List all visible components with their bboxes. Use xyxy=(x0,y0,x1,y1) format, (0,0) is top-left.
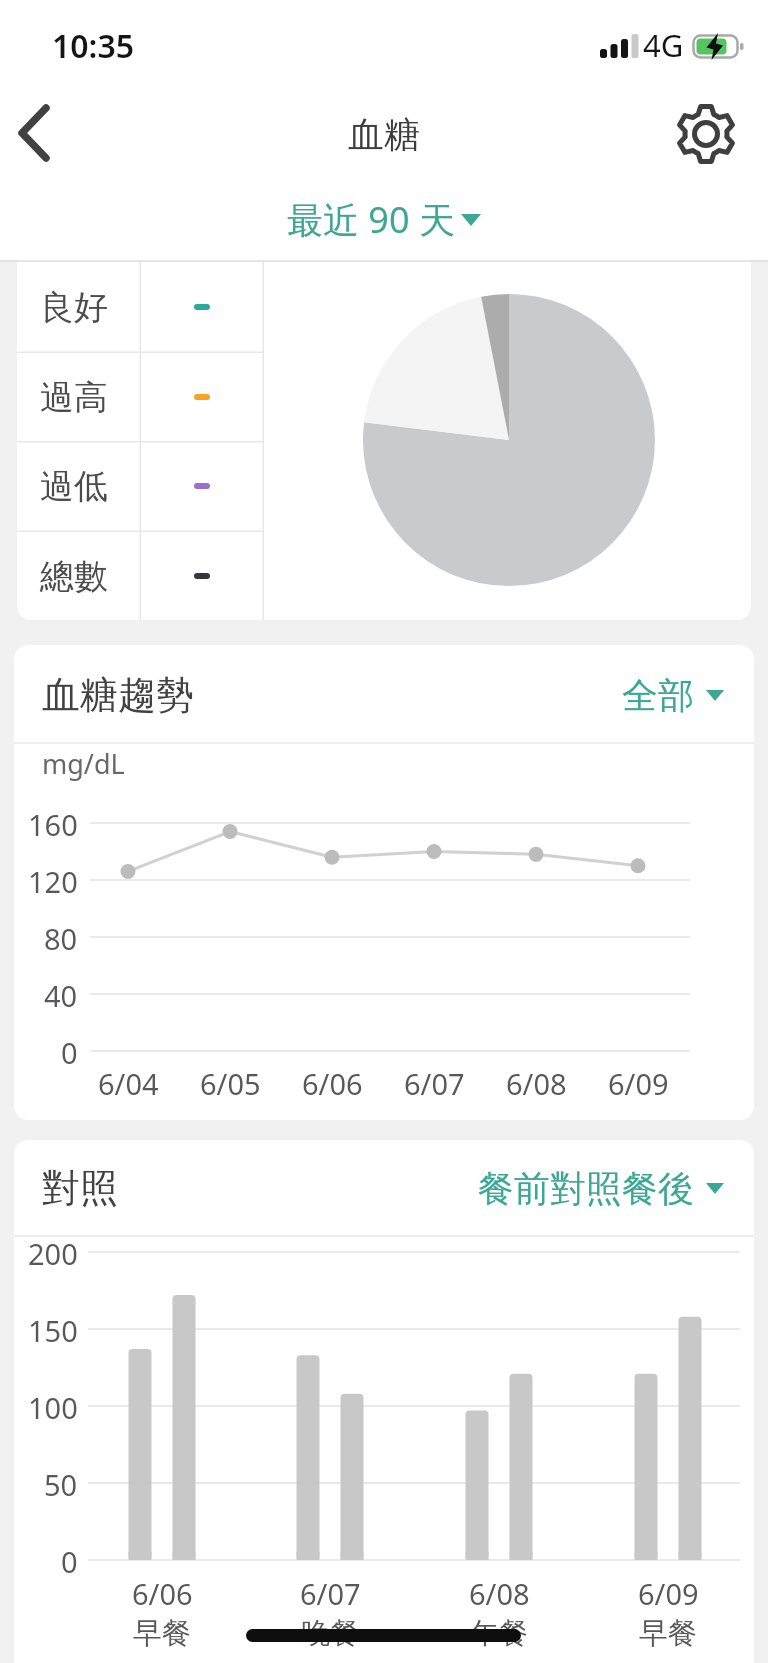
staticText: 6/06 xyxy=(302,1064,363,1100)
staticText: 80 xyxy=(44,919,78,955)
staticText: 6/06 xyxy=(132,1574,193,1610)
staticText: 過高 xyxy=(40,376,108,419)
staticText: 150 xyxy=(28,1311,78,1347)
staticText: 6/07 xyxy=(404,1064,465,1100)
staticText: 40 xyxy=(44,976,78,1012)
staticText: 6/09 xyxy=(638,1574,699,1610)
staticText: 50 xyxy=(44,1465,78,1501)
staticText: 全部 xyxy=(622,673,694,718)
staticText: 最近 90 天 xyxy=(287,195,455,244)
button[interactable] xyxy=(670,96,742,172)
button[interactable]: 全部 xyxy=(584,665,724,725)
staticText: 血糖 xyxy=(348,112,420,157)
staticText: 4G xyxy=(643,24,684,66)
staticText: 總數 xyxy=(40,555,108,598)
staticText: 6/09 xyxy=(608,1064,669,1100)
staticText: 200 xyxy=(28,1234,78,1270)
button[interactable]: 餐前對照餐後 xyxy=(454,1158,724,1218)
staticText: 6/04 xyxy=(98,1064,159,1100)
staticText: 160 xyxy=(28,805,78,841)
staticText: 0 xyxy=(61,1542,78,1578)
staticText: 6/08 xyxy=(506,1064,567,1100)
button[interactable]: 最近 90 天 xyxy=(0,178,768,260)
staticText: 餐前對照餐後 xyxy=(478,1166,694,1211)
staticText: 10:35 xyxy=(52,24,135,66)
staticText: 過低 xyxy=(40,465,108,508)
staticText: 早餐 xyxy=(639,1615,697,1652)
staticText: 良好 xyxy=(40,286,108,329)
staticText: mg/dL xyxy=(42,745,125,781)
staticText: 早餐 xyxy=(133,1615,191,1652)
staticText: 6/07 xyxy=(300,1574,361,1610)
staticText: 0 xyxy=(61,1033,78,1069)
staticText: 對照 xyxy=(42,1164,118,1212)
button[interactable] xyxy=(4,98,68,170)
staticText: 6/08 xyxy=(469,1574,530,1610)
staticText: 6/05 xyxy=(200,1064,261,1100)
staticText: 血糖趨勢 xyxy=(42,671,194,719)
staticText: 120 xyxy=(28,862,78,898)
staticText: 晚餐 xyxy=(301,1615,359,1652)
staticText: 100 xyxy=(28,1388,78,1424)
staticText: 午餐 xyxy=(470,1615,528,1652)
